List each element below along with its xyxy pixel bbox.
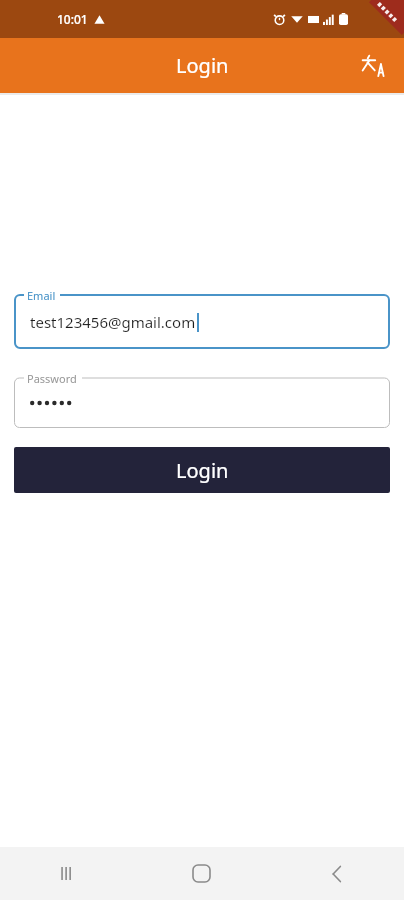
button[interactable]: Change language (350, 43, 396, 89)
staticText: Login (176, 52, 229, 79)
staticText: 10:01 (57, 11, 88, 27)
staticText: Email (27, 288, 56, 303)
staticText: test123456@gmail.com (30, 312, 196, 332)
button[interactable]: Back (269, 847, 404, 900)
staticText: Login (176, 457, 229, 484)
staticText: Password (27, 371, 77, 386)
button[interactable]: Login (14, 447, 390, 493)
button[interactable]: Home (134, 847, 269, 900)
button[interactable]: Email (14, 287, 390, 349)
button[interactable]: Password (14, 370, 390, 428)
button[interactable]: Recents (0, 847, 134, 900)
